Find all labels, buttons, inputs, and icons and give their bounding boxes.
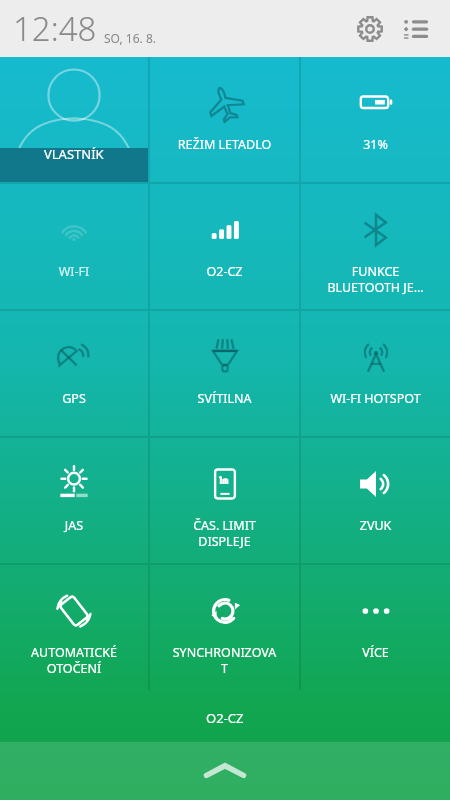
button[interactable]: SYNCHRONIZOVA T [150,565,299,690]
staticText: SVÍTILNA [153,390,296,407]
staticText: O2-CZ [206,709,244,727]
button[interactable]: O2-CZ [150,184,299,309]
button[interactable]: Settings [350,9,390,49]
staticText: VÍCE [304,644,447,661]
button[interactable]: ČAS. LIMIT DISPLEJE [150,438,299,563]
staticText: SYNCHRONIZOVA T [153,644,296,676]
staticText: GPS [3,390,145,407]
staticText: 31% [304,136,447,153]
staticText: JAS [3,517,145,534]
button[interactable]: AUTOMATICKÉ OTOČENÍ [0,565,148,690]
button[interactable]: WI-FI HOTSPOT [301,311,450,436]
staticText: SO, 16. 8. [104,30,156,46]
staticText: AUTOMATICKÉ OTOČENÍ [3,644,145,676]
staticText: REŽIM LETADLO [153,136,296,153]
button[interactable]: VLASTNÍK [0,57,148,182]
staticText: WI-FI HOTSPOT [304,390,447,407]
button[interactable]: WI-FI [0,184,148,309]
button[interactable]: JAS [0,438,148,563]
button[interactable]: VÍCE [301,565,450,690]
button[interactable]: 31% [301,57,450,182]
button[interactable]: ZVUK [301,438,450,563]
staticText: WI-FI [3,263,145,280]
button[interactable]: Collapse panel [0,742,450,800]
staticText: ZVUK [304,517,447,534]
button[interactable]: REŽIM LETADLO [150,57,299,182]
staticText: 12:48 [13,6,97,51]
staticText: O2-CZ [153,263,296,280]
staticText: ČAS. LIMIT DISPLEJE [153,517,296,549]
staticText: FUNKCE BLUETOOTH JE… [304,263,447,295]
button[interactable]: GPS [0,311,148,436]
button[interactable]: Notifications [396,9,436,49]
button[interactable]: SVÍTILNA [150,311,299,436]
button[interactable]: FUNKCE BLUETOOTH JE… [301,184,450,309]
staticText: VLASTNÍK [44,145,104,163]
